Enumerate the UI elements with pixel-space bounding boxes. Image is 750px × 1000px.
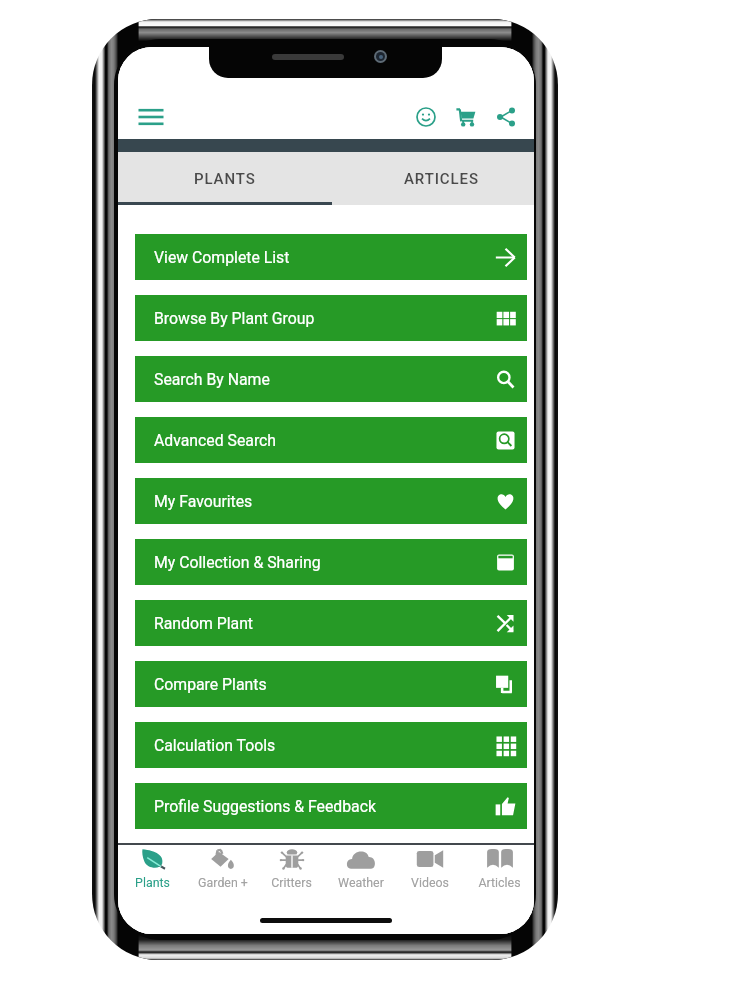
button[interactable]: Videos — [395, 847, 464, 899]
button[interactable]: View Complete List — [135, 234, 527, 280]
staticText: View Complete List — [154, 248, 290, 267]
button[interactable]: PLANTS — [118, 152, 332, 205]
button[interactable]: Search By Name — [135, 356, 527, 402]
button[interactable]: ARTICLES — [332, 152, 534, 205]
button[interactable]: Weather — [326, 847, 395, 899]
staticText: Critters — [271, 875, 312, 890]
button[interactable]: Compare Plants — [135, 661, 527, 707]
staticText: ARTICLES — [404, 170, 479, 188]
staticText: Advanced Search — [154, 431, 277, 450]
button[interactable]: Cart — [446, 97, 486, 137]
staticText: Compare Plants — [154, 675, 267, 694]
button[interactable]: Random Plant — [135, 600, 527, 646]
button[interactable]: Plants — [118, 847, 187, 899]
button[interactable]: Articles — [465, 847, 534, 899]
button[interactable]: Menu — [129, 95, 173, 139]
button[interactable]: My Collection & Sharing — [135, 539, 527, 585]
staticText: Profile Suggestions & Feedback — [154, 797, 376, 816]
staticText: Calculation Tools — [154, 736, 276, 755]
staticText: Random Plant — [154, 614, 254, 633]
staticText: Articles — [478, 875, 521, 890]
staticText: My Collection & Sharing — [154, 553, 321, 572]
staticText: PLANTS — [194, 170, 256, 188]
staticText: Videos — [411, 875, 449, 890]
staticText: Weather — [338, 875, 384, 890]
button[interactable]: Mood — [406, 97, 446, 137]
button[interactable]: Profile Suggestions & Feedback — [135, 783, 527, 829]
staticText: Search By Name — [154, 370, 270, 389]
button[interactable]: Garden + — [188, 847, 257, 899]
button[interactable]: Share — [486, 97, 526, 137]
button[interactable]: Calculation Tools — [135, 722, 527, 768]
button[interactable]: Advanced Search — [135, 417, 527, 463]
button[interactable]: Browse By Plant Group — [135, 295, 527, 341]
staticText: Browse By Plant Group — [154, 309, 315, 328]
staticText: Plants — [135, 875, 170, 890]
staticText: Garden + — [198, 875, 248, 890]
button[interactable]: My Favourites — [135, 478, 527, 524]
button[interactable]: Critters — [257, 847, 326, 899]
staticText: My Favourites — [154, 492, 253, 511]
